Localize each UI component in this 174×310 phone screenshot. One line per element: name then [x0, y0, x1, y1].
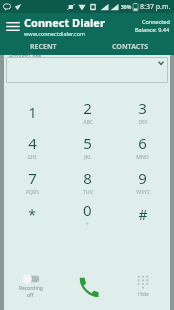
staticText: Hide [138, 291, 149, 298]
button[interactable]: 7 [4, 164, 60, 199]
staticText: 6 [138, 133, 147, 153]
staticText: 5 [83, 133, 92, 153]
staticText: WXYZ [136, 189, 150, 196]
button[interactable]: Hide dialpad [116, 264, 170, 308]
button[interactable]: Account Code [6, 57, 168, 83]
staticText: off [27, 292, 34, 299]
staticText: 30% [121, 4, 132, 11]
button[interactable]: 5 [60, 129, 115, 164]
staticText: TUV [83, 189, 93, 196]
staticText: 3 [138, 98, 147, 118]
button[interactable]: 0 [60, 199, 115, 229]
staticText: www.connectdialer.com [24, 30, 86, 37]
button[interactable]: CONTACTS [87, 38, 174, 55]
button[interactable]: 9 [115, 164, 170, 199]
staticText: RECENT [30, 42, 57, 52]
staticText: Connect Dialer [24, 15, 105, 30]
button[interactable]: 6 [115, 129, 170, 164]
button[interactable]: 3 [115, 94, 170, 129]
button[interactable]: 4 [4, 129, 60, 164]
staticText: Recording [19, 285, 43, 292]
staticText: 4 [28, 133, 37, 153]
button[interactable]: Call [57, 264, 116, 308]
staticText: 0 [83, 200, 92, 220]
button[interactable]: 8 [60, 164, 115, 199]
staticText: 9 [138, 168, 147, 188]
button[interactable]: 1 [4, 94, 60, 129]
staticText: Account Code [9, 53, 42, 60]
staticText: DEF [138, 119, 148, 126]
staticText: # [138, 205, 148, 224]
button[interactable]: # [115, 199, 170, 229]
staticText: CONTACTS [112, 42, 149, 52]
staticText: 8 [83, 168, 92, 188]
staticText: 7 [28, 168, 37, 188]
button[interactable]: Open navigation menu [4, 17, 22, 35]
staticText: Connected [142, 18, 170, 25]
staticText: MNO [136, 154, 149, 161]
staticText: + [86, 221, 89, 228]
button[interactable]: 2 [60, 94, 115, 129]
staticText: PQRS [26, 189, 39, 196]
staticText: Balance: 9.44 [135, 26, 170, 33]
staticText: 2 [83, 98, 92, 118]
staticText: * [28, 205, 36, 224]
button[interactable]: Recording [4, 264, 57, 308]
button[interactable]: * [4, 199, 60, 229]
staticText: GHI [27, 154, 37, 161]
staticText: 1 [28, 102, 37, 122]
staticText: JKL [84, 154, 92, 161]
staticText: ABC [83, 119, 93, 126]
staticText: 8:37 p.m. [140, 2, 171, 12]
button[interactable]: RECENT [0, 38, 87, 55]
